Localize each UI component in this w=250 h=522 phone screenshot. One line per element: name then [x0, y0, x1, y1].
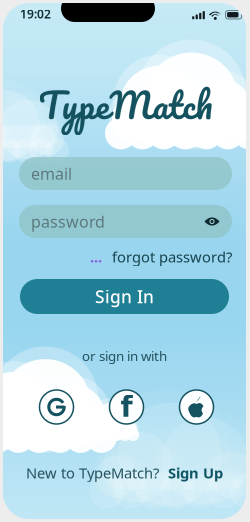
- staticText: password: [31, 211, 105, 232]
- button[interactable]: Sign Up: [168, 463, 223, 482]
- button[interactable]: Show password: [204, 215, 220, 227]
- button[interactable]: Sign in with Apple: [176, 387, 216, 427]
- button[interactable]: Sign In: [20, 279, 229, 314]
- button[interactable]: Sign in with Google: [36, 387, 76, 427]
- staticText: New to TypeMatch?: [26, 463, 159, 482]
- button[interactable]: forgot password?: [112, 247, 232, 266]
- staticText: Sign In: [95, 285, 154, 308]
- staticText: email: [31, 163, 72, 184]
- staticText: Sign Up: [168, 463, 223, 482]
- staticText: ...: [90, 247, 102, 266]
- staticText: 19:02: [20, 6, 51, 22]
- button[interactable]: Sign in with Facebook: [106, 387, 146, 427]
- staticText: or sign in with: [82, 347, 167, 365]
- staticText: TypeMatch: [38, 74, 212, 135]
- staticText: forgot password?: [112, 247, 232, 266]
- staticText: f: [120, 391, 132, 423]
